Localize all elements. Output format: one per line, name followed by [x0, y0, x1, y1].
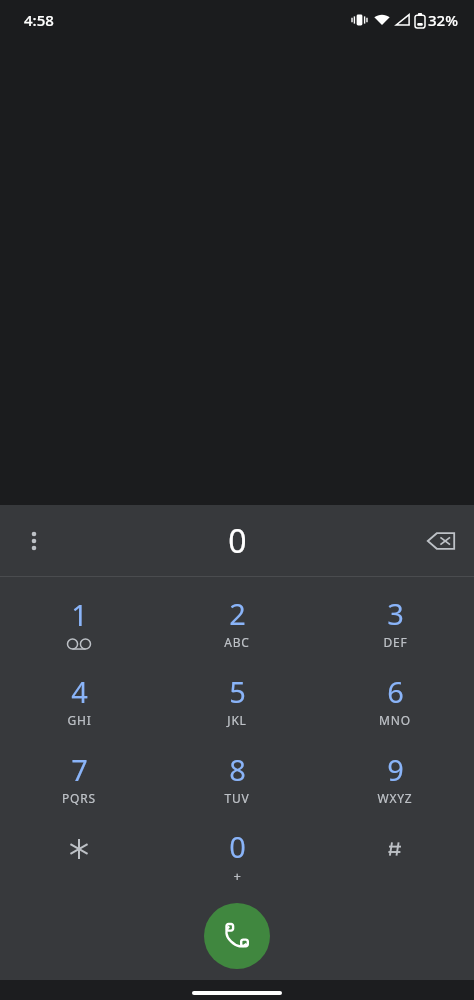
staticText: 4: [71, 672, 88, 711]
staticText: TUV: [224, 790, 250, 806]
staticText: PQRS: [62, 790, 96, 806]
staticText: 32%: [428, 10, 458, 30]
button[interactable]: 5: [158, 661, 316, 739]
staticText: 0: [228, 519, 247, 563]
button[interactable]: 2: [158, 583, 316, 661]
staticText: 1: [71, 595, 88, 634]
button[interactable]: 7: [0, 739, 158, 817]
button[interactable]: More options: [10, 517, 58, 565]
button[interactable]: Call: [204, 903, 270, 969]
staticText: +: [233, 867, 242, 885]
button[interactable]: 4: [0, 661, 158, 739]
button[interactable]: [316, 817, 474, 895]
staticText: 7: [71, 750, 88, 789]
staticText: 4:58: [24, 10, 54, 30]
staticText: GHI: [67, 712, 92, 728]
button[interactable]: Backspace: [417, 517, 465, 565]
button[interactable]: 6: [316, 661, 474, 739]
staticText: WXYZ: [377, 790, 413, 806]
staticText: 6: [387, 672, 404, 711]
staticText: MNO: [379, 712, 411, 728]
button[interactable]: 3: [316, 583, 474, 661]
staticText: 0: [229, 827, 246, 866]
staticText: 3: [387, 594, 404, 633]
button[interactable]: 0: [158, 817, 316, 895]
button[interactable]: [0, 817, 158, 895]
button[interactable]: 8: [158, 739, 316, 817]
staticText: DEF: [383, 634, 408, 650]
staticText: 8: [229, 750, 246, 789]
staticText: ABC: [224, 634, 250, 650]
staticText: 2: [229, 594, 246, 633]
staticText: JKL: [227, 712, 247, 728]
button[interactable]: 1: [0, 583, 158, 661]
staticText: 5: [229, 672, 246, 711]
staticText: 9: [387, 750, 404, 789]
button[interactable]: 9: [316, 739, 474, 817]
